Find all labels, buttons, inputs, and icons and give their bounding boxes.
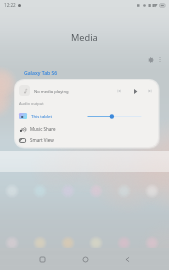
button[interactable]: Home — [77, 251, 93, 267]
button[interactable]: Music Share — [15, 123, 158, 135]
button[interactable]: Settings — [145, 54, 157, 66]
staticText: No media playing — [34, 89, 69, 95]
button[interactable]: Smart View — [15, 134, 158, 146]
button[interactable]: Play — [128, 84, 142, 98]
staticText: This tablet — [31, 113, 53, 119]
staticText: Music Share — [30, 126, 56, 132]
staticText: Galaxy Tab S6 — [24, 70, 58, 77]
staticText: Audio output — [19, 101, 44, 106]
button[interactable]: Next — [143, 84, 157, 98]
button[interactable]: Back — [119, 251, 135, 267]
button[interactable]: Previous — [112, 84, 126, 98]
staticText: Smart View — [30, 137, 54, 143]
button[interactable]: Recents — [34, 251, 50, 267]
staticText: 12:22 — [4, 2, 16, 8]
staticText: Media — [71, 31, 98, 44]
button[interactable]: More options — [155, 54, 165, 64]
button[interactable]: This tablet — [15, 110, 158, 122]
